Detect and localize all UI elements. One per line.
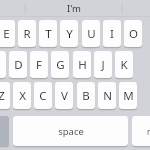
button[interactable]: N: [98, 82, 116, 109]
staticText: O: [129, 26, 138, 42]
staticText: Y: [66, 26, 73, 42]
button[interactable]: D: [9, 51, 27, 78]
staticText: C: [39, 88, 47, 104]
button[interactable]: I'm: [25, 0, 122, 17]
button[interactable]: M: [119, 82, 137, 109]
staticText: K: [120, 57, 128, 73]
button[interactable]: space: [13, 116, 128, 146]
staticText: N: [103, 88, 112, 104]
button[interactable]: E: [0, 20, 15, 47]
staticText: R: [23, 26, 31, 42]
staticText: Z: [0, 88, 5, 104]
staticText: X: [19, 88, 26, 104]
staticText: F: [36, 57, 42, 73]
button[interactable]: G: [51, 51, 69, 78]
button[interactable]: J: [94, 51, 112, 78]
staticText: D: [14, 57, 23, 73]
staticText: T: [45, 26, 52, 42]
button[interactable]: B: [77, 82, 95, 109]
staticText: I: [110, 26, 114, 42]
staticText: J: [101, 57, 105, 73]
button[interactable]: V: [55, 82, 73, 109]
button[interactable]: S: [0, 51, 6, 78]
button[interactable]: X: [13, 82, 31, 109]
staticText: E: [3, 26, 10, 42]
button[interactable]: U: [82, 20, 100, 47]
button[interactable]: I: [103, 20, 121, 47]
button[interactable]: [132, 116, 150, 146]
button[interactable]: H: [73, 51, 91, 78]
staticText: space: [58, 125, 84, 138]
staticText: G: [56, 57, 65, 73]
button[interactable]: O: [124, 20, 142, 47]
staticText: M: [123, 88, 134, 104]
button[interactable]: R: [18, 20, 36, 47]
button[interactable]: T: [39, 20, 57, 47]
button[interactable]: K: [115, 51, 133, 78]
button[interactable]: Y: [60, 20, 78, 47]
button[interactable]: F: [30, 51, 48, 78]
staticText: I'm: [67, 2, 81, 15]
staticText: H: [78, 57, 87, 73]
staticText: r: [147, 126, 150, 137]
button[interactable]: Z: [0, 82, 10, 109]
button[interactable]: C: [34, 82, 52, 109]
staticText: B: [82, 88, 90, 104]
staticText: U: [87, 26, 96, 42]
button[interactable]: Return: [132, 116, 150, 146]
staticText: V: [61, 88, 68, 104]
